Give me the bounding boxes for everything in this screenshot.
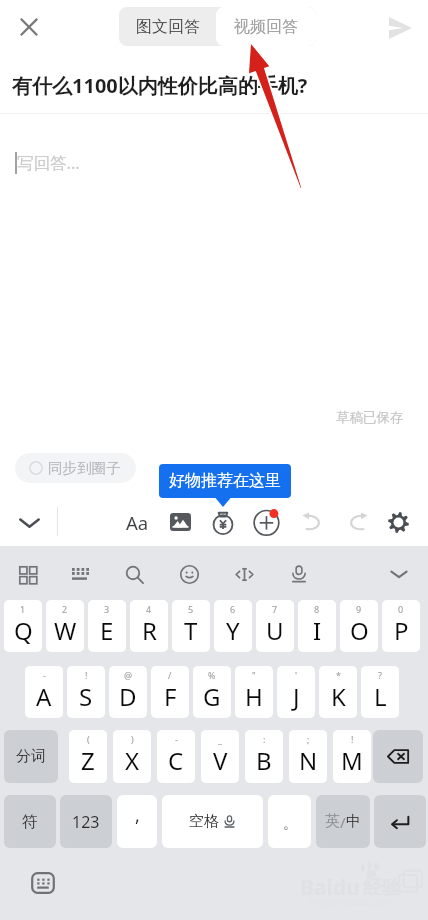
button[interactable]: , (117, 795, 157, 848)
staticText: 4 (146, 603, 152, 615)
staticText: I (313, 614, 322, 647)
button[interactable]: Panels (11, 558, 43, 590)
staticText: E (100, 614, 114, 647)
button[interactable]: _ (201, 730, 239, 783)
button[interactable]: % (193, 666, 231, 718)
button[interactable]: 。 (268, 795, 311, 848)
staticText: Z (81, 744, 95, 777)
staticText: ! (85, 669, 88, 681)
button[interactable]: ' (277, 666, 315, 718)
staticText: % (208, 669, 216, 681)
button[interactable]: * (319, 666, 357, 718)
staticText: Aa (126, 510, 149, 535)
button[interactable]: Keyboard layout (64, 558, 96, 590)
button[interactable]: Emoji (173, 558, 205, 590)
staticText: ! (351, 733, 354, 745)
staticText: 同步到圈子 (48, 459, 121, 477)
staticText: J (293, 680, 300, 713)
button[interactable]: Close (7, 5, 51, 49)
staticText: 。 (283, 815, 297, 833)
button[interactable]: 123 (60, 795, 112, 848)
button[interactable]: 空格 (162, 795, 263, 848)
staticText: : (263, 733, 266, 745)
staticText: 6 (230, 603, 236, 615)
staticText: B (256, 744, 272, 777)
button[interactable]: ! (333, 730, 371, 783)
button[interactable]: ) (113, 730, 151, 783)
staticText: - (43, 669, 46, 681)
button[interactable]: @ (109, 666, 147, 718)
button[interactable]: " (235, 666, 273, 718)
button[interactable]: Redo (337, 502, 377, 542)
staticText: _ (218, 733, 222, 745)
button[interactable]: : (245, 730, 283, 783)
staticText: 符 (22, 812, 38, 832)
button[interactable]: 0 (382, 600, 420, 652)
button[interactable]: Money (203, 502, 243, 542)
staticText: G (203, 680, 221, 713)
staticText: ' (295, 669, 298, 681)
button[interactable]: Enter (374, 795, 426, 848)
button[interactable]: 视频回答 (216, 7, 316, 46)
button[interactable]: Collapse (9, 502, 49, 542)
button[interactable]: Hide keyboard (383, 558, 415, 590)
staticText: 空格 (189, 812, 219, 831)
button[interactable]: 2 (46, 600, 84, 652)
button[interactable]: Voice (283, 558, 315, 590)
button[interactable]: ( (69, 730, 107, 783)
button[interactable]: - (25, 666, 63, 718)
staticText: 好物推荐在这里 (169, 471, 281, 491)
button[interactable]: 8 (298, 600, 336, 652)
staticText: 123 (72, 811, 100, 833)
button[interactable]: ; (289, 730, 327, 783)
button[interactable]: 1 (4, 600, 42, 652)
button[interactable]: / (151, 666, 189, 718)
staticText: ; (307, 733, 310, 745)
staticText: ? (378, 669, 382, 681)
staticText: / (168, 669, 172, 681)
button[interactable]: 好物推荐在这里 (159, 464, 291, 498)
button[interactable]: Search (118, 558, 150, 590)
button[interactable]: 图文回答 (119, 7, 216, 46)
button[interactable]: 同步到圈子 (29, 453, 121, 483)
button[interactable]: Switch keyboard (27, 867, 59, 899)
button[interactable]: Cursor (228, 558, 260, 590)
button[interactable]: Image (160, 502, 200, 542)
button[interactable]: 3 (88, 600, 126, 652)
button[interactable]: 4 (130, 600, 168, 652)
staticText: " (252, 669, 256, 681)
staticText: C (168, 744, 184, 777)
staticText: A (36, 680, 52, 713)
staticText: F (164, 680, 177, 713)
button[interactable]: Backspace (373, 730, 423, 783)
button[interactable]: 5 (172, 600, 210, 652)
button[interactable]: Send (378, 6, 422, 50)
button[interactable]: - (157, 730, 195, 783)
button[interactable]: Add (248, 502, 288, 542)
button[interactable]: 分词 (4, 730, 58, 783)
button[interactable]: Settings (378, 502, 418, 542)
staticText: O (350, 614, 369, 647)
button[interactable]: 6 (214, 600, 252, 652)
button[interactable]: ! (67, 666, 105, 718)
button[interactable]: 9 (340, 600, 378, 652)
staticText: T (184, 614, 198, 647)
button[interactable]: 英 (316, 795, 370, 848)
staticText: L (374, 680, 387, 713)
button[interactable]: Undo (292, 502, 332, 542)
button[interactable]: 7 (256, 600, 294, 652)
button[interactable]: ? (361, 666, 399, 718)
staticText: 3 (104, 603, 110, 615)
staticText: 中 (346, 812, 361, 831)
button[interactable]: 符 (4, 795, 56, 848)
staticText: 8 (314, 603, 320, 615)
staticText: H (245, 680, 263, 713)
staticText: * (336, 669, 341, 681)
button[interactable]: Aa (117, 502, 157, 542)
staticText: R (142, 614, 157, 647)
staticText: Y (226, 614, 240, 647)
staticText: 英 (325, 812, 340, 831)
staticText: 视频回答 (234, 17, 298, 37)
